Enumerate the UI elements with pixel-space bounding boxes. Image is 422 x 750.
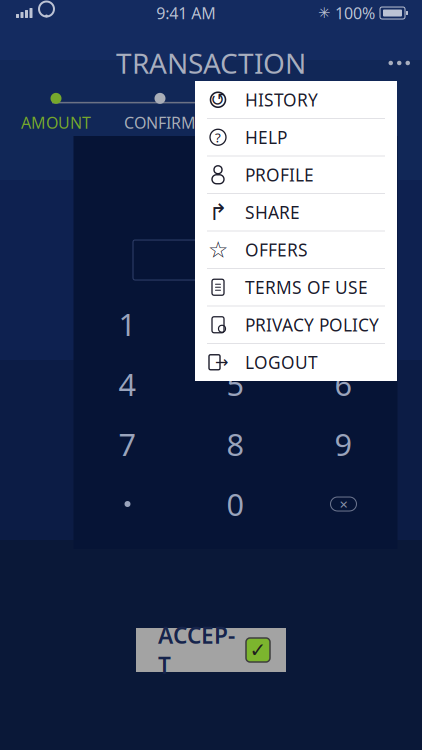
button[interactable]: ACCEPT bbox=[136, 628, 286, 672]
staticText: LOGOUT bbox=[245, 351, 318, 374]
button[interactable]: 0 bbox=[181, 474, 289, 534]
button[interactable]: 8 bbox=[181, 414, 289, 474]
staticText: → bbox=[215, 353, 228, 371]
button[interactable]: 1 bbox=[73, 294, 181, 354]
staticText: 7 bbox=[118, 424, 136, 464]
staticText: ✳ bbox=[318, 5, 330, 21]
staticText: ACCEPT bbox=[158, 620, 235, 680]
staticText: 9 bbox=[334, 424, 352, 464]
button[interactable]: ↺ bbox=[195, 81, 397, 119]
staticText: 3 bbox=[334, 304, 352, 344]
staticText: PRIVACY POLICY bbox=[245, 313, 379, 336]
staticText: ↱ bbox=[208, 199, 227, 225]
staticText: 9:41 AM bbox=[156, 2, 216, 24]
staticText: × bbox=[339, 494, 347, 514]
button[interactable]: 4 bbox=[73, 354, 181, 414]
button[interactable]: → bbox=[195, 344, 397, 380]
staticText: 0 bbox=[226, 484, 244, 524]
button[interactable]: ☆ bbox=[195, 231, 397, 269]
staticText: SHARE bbox=[245, 201, 300, 224]
button[interactable]: PROFILE bbox=[195, 156, 397, 194]
button[interactable]: ↱ bbox=[195, 194, 397, 231]
button[interactable]: Delete bbox=[289, 474, 397, 534]
staticText: ↺ bbox=[210, 90, 225, 110]
button[interactable]: 9 bbox=[289, 414, 397, 474]
button[interactable]: 2 bbox=[181, 294, 289, 354]
staticText: OFFERS bbox=[245, 238, 308, 261]
staticText: ? bbox=[215, 128, 221, 146]
staticText: HELP bbox=[245, 126, 287, 149]
staticText: 4 bbox=[118, 364, 136, 404]
button[interactable]: PRIVACY POLICY bbox=[195, 306, 397, 344]
button[interactable]: More options bbox=[376, 47, 422, 79]
staticText: CONFIRM bbox=[124, 112, 196, 133]
staticText: ✓ bbox=[249, 639, 266, 661]
button[interactable]: 6 bbox=[289, 354, 397, 414]
staticText: AMOUNT bbox=[21, 112, 91, 133]
button[interactable]: Decimal point bbox=[73, 474, 181, 534]
staticText: PROFILE bbox=[245, 163, 314, 186]
staticText: 100% bbox=[335, 2, 375, 24]
staticText: 5 bbox=[226, 364, 244, 404]
staticText: 6 bbox=[334, 364, 352, 404]
button[interactable]: ? bbox=[195, 119, 397, 156]
button[interactable]: 3 bbox=[289, 294, 397, 354]
staticText: 8 bbox=[226, 424, 244, 464]
staticText: ☆ bbox=[208, 237, 228, 263]
staticText: HISTORY bbox=[245, 88, 318, 111]
button[interactable]: TERMS OF USE bbox=[195, 269, 397, 306]
staticText: 2 bbox=[226, 304, 244, 344]
button[interactable]: 7 bbox=[73, 414, 181, 474]
button[interactable]: 5 bbox=[181, 354, 289, 414]
staticText: TRANSACTION bbox=[116, 44, 306, 82]
staticText: TERMS OF USE bbox=[245, 276, 368, 299]
staticText: 1 bbox=[118, 304, 136, 344]
